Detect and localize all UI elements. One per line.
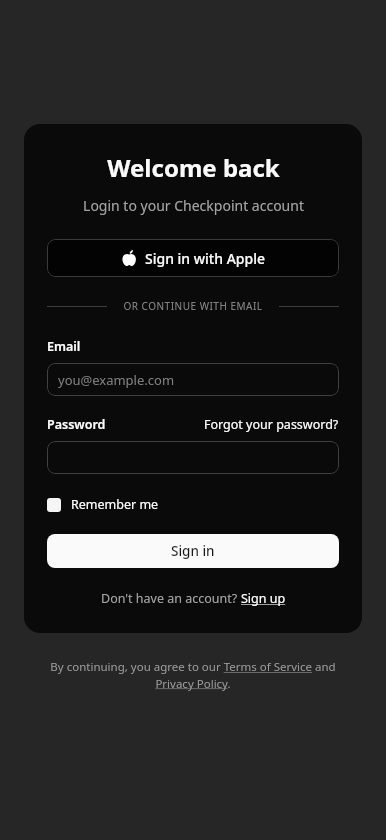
staticText: Welcome back bbox=[107, 151, 280, 184]
staticText: Login to your Checkpoint account bbox=[83, 196, 304, 215]
button[interactable]: Remember me bbox=[47, 496, 339, 513]
staticText: Sign in with Apple bbox=[145, 249, 265, 268]
staticText: Sign up bbox=[241, 590, 286, 607]
staticText: OR CONTINUE WITH EMAIL bbox=[117, 299, 269, 313]
button[interactable]: Sign in bbox=[47, 534, 339, 568]
button[interactable]: Forgot your password? bbox=[204, 416, 339, 433]
staticText: Forgot your password? bbox=[204, 416, 339, 433]
button[interactable]: Sign up bbox=[241, 590, 286, 607]
staticText: you@example.com bbox=[58, 371, 175, 389]
button[interactable] bbox=[47, 441, 339, 474]
button[interactable]: you@example.com bbox=[47, 363, 339, 396]
staticText: Sign in bbox=[171, 542, 215, 560]
button[interactable]: Apple logo bbox=[47, 239, 339, 277]
staticText: Password bbox=[47, 416, 106, 433]
other: Apple logo bbox=[122, 250, 136, 266]
staticText: By continuing, you agree to our Terms of… bbox=[40, 659, 346, 691]
staticText: Email bbox=[47, 338, 81, 355]
staticText: Don't have an account? bbox=[101, 590, 241, 607]
staticText: Remember me bbox=[71, 496, 159, 513]
